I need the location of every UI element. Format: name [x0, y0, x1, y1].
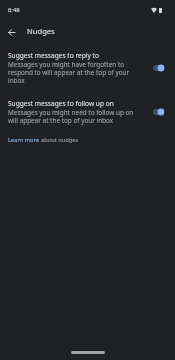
staticText: Learn more: [8, 136, 41, 144]
staticText: Messages you might have forgotten to res…: [8, 60, 140, 85]
button[interactable]: Toggle: [152, 106, 168, 118]
staticText: Suggest messages to follow up on: [8, 99, 114, 108]
button[interactable]: Learn more: [8, 136, 79, 144]
button[interactable]: Toggle: [152, 62, 168, 74]
staticText: Messages you might need to follow up on …: [8, 108, 140, 125]
staticText: Suggest messages to reply to: [8, 51, 99, 60]
button[interactable]: Suggest messages to follow up on: [0, 85, 175, 125]
staticText: about nudges: [41, 136, 79, 144]
button[interactable]: Suggest messages to reply to: [0, 44, 175, 85]
staticText: Nudges: [27, 26, 55, 36]
button[interactable]: Back: [2, 23, 20, 41]
staticText: 6:48: [8, 6, 20, 14]
